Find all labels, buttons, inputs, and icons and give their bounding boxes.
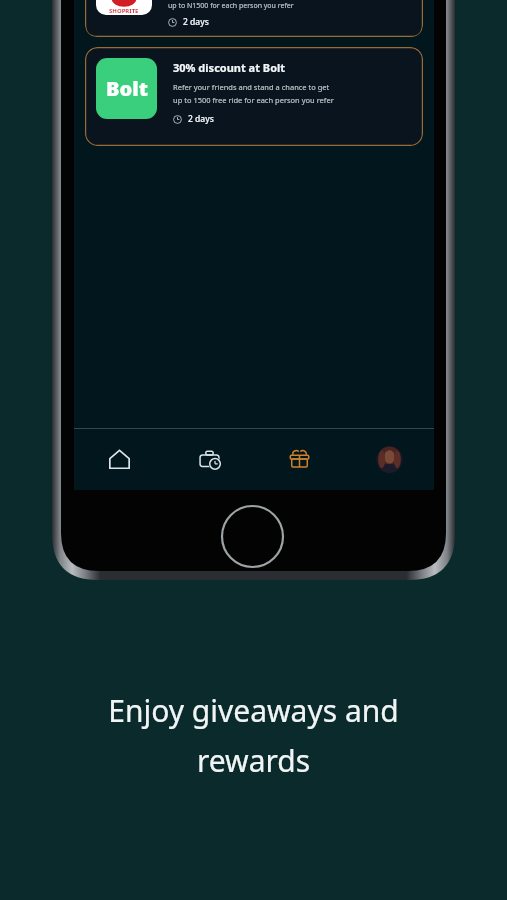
staticText: 2 days xyxy=(183,16,209,28)
staticText: 30% discount at Bolt xyxy=(173,60,286,75)
button[interactable]: History xyxy=(164,429,254,490)
staticText: up to 1500 free ride for each person you… xyxy=(173,95,334,105)
button[interactable]: SHOPRITE xyxy=(85,0,423,37)
button[interactable]: Home xyxy=(74,429,164,490)
other: Home button xyxy=(221,505,284,568)
staticText: Enjoy giveaways and rewards xyxy=(108,690,399,781)
button[interactable]: Profile xyxy=(344,429,434,490)
button[interactable]: Bolt xyxy=(85,47,423,146)
staticText: Bolt xyxy=(106,75,148,102)
staticText: 2 days xyxy=(188,113,214,125)
staticText: SHOPRITE xyxy=(109,7,139,15)
staticText: Refer your friends and stand a chance to… xyxy=(173,82,330,92)
button[interactable]: Rewards xyxy=(254,429,344,490)
staticText: up to N1500 for each person you refer xyxy=(168,1,294,11)
